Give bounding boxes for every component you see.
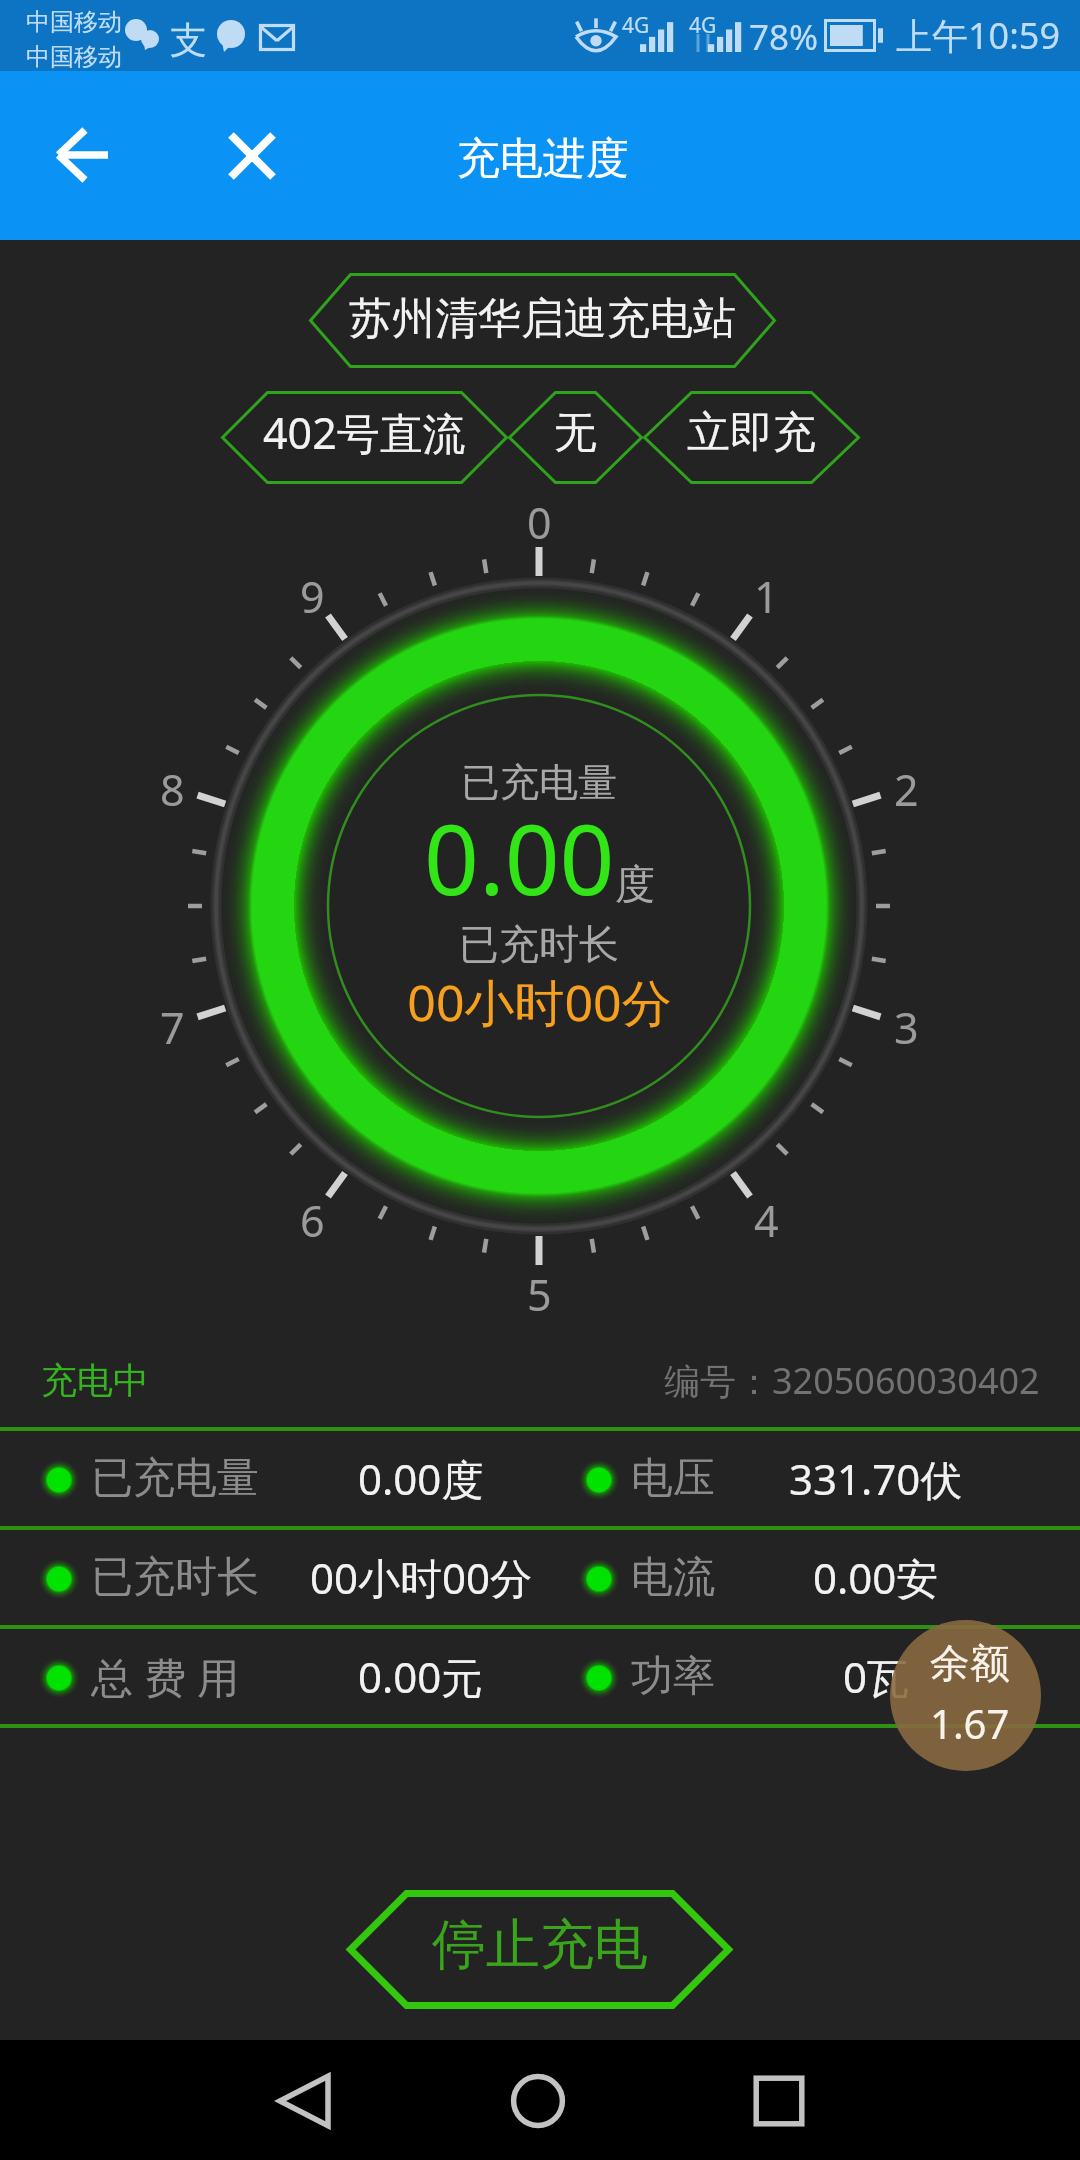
staticText: 7 xyxy=(160,998,185,1048)
staticText: 00小时00分 xyxy=(310,1549,533,1606)
staticText: 中国移动 xyxy=(26,7,122,37)
staticText: 余额 xyxy=(930,1638,1010,1688)
staticText: 0 xyxy=(527,493,552,543)
staticText: 已充时长 xyxy=(91,1551,259,1604)
staticText: 电流 xyxy=(631,1551,715,1604)
staticText: 支 xyxy=(170,17,207,64)
staticText: 78% xyxy=(749,13,819,61)
button[interactable]: Back xyxy=(264,2061,344,2141)
staticText: 9 xyxy=(300,567,325,617)
staticText: 已充时长 xyxy=(459,919,619,969)
button[interactable]: 402号直流 xyxy=(221,391,508,484)
staticText: 5 xyxy=(527,1265,552,1315)
staticText: 中国移动 xyxy=(26,42,122,72)
staticText: 0.00度 xyxy=(358,1450,484,1507)
staticText: 6 xyxy=(300,1191,325,1241)
staticText: 0.00 xyxy=(424,792,615,923)
staticText: 充电中 xyxy=(41,1358,149,1403)
staticText: 上午10:59 xyxy=(896,11,1061,60)
button[interactable]: Back xyxy=(24,95,144,215)
staticText: 2 xyxy=(894,760,919,810)
staticText: 度 xyxy=(615,859,655,909)
staticText: 4 xyxy=(754,1191,779,1241)
button[interactable]: 立即充 xyxy=(643,391,860,484)
staticText: 停止充电 xyxy=(432,1911,648,1979)
staticText: 编号：3205060030402 xyxy=(664,1356,1040,1405)
button[interactable]: 已充时长 xyxy=(0,1529,1080,1625)
button[interactable]: 总 费 用 xyxy=(0,1628,1080,1724)
button[interactable]: Home xyxy=(498,2061,578,2141)
button[interactable]: 苏州清华启迪充电站 xyxy=(309,273,776,368)
staticText: 已充电量 xyxy=(91,1452,259,1505)
staticText: 无 xyxy=(554,406,597,460)
staticText: 4G xyxy=(689,11,717,40)
staticText: 电压 xyxy=(631,1452,715,1505)
staticText: 已充电量 xyxy=(461,758,617,807)
button[interactable]: 停止充电 xyxy=(347,1890,732,2009)
staticText: 4G xyxy=(622,11,650,40)
staticText: 1.67 xyxy=(930,1696,1010,1750)
staticText: 立即充 xyxy=(687,406,816,460)
staticText: 8 xyxy=(160,760,185,810)
staticText: 总 费 用 xyxy=(91,1648,239,1705)
button[interactable]: 余额 xyxy=(890,1620,1041,1771)
staticText: 0.00安 xyxy=(813,1549,939,1606)
staticText: 3 xyxy=(894,998,919,1048)
staticText: 0.00元 xyxy=(358,1648,484,1705)
staticText: 功率 xyxy=(631,1650,715,1703)
button[interactable]: 已充电量 xyxy=(0,1430,1080,1526)
button[interactable]: Close xyxy=(192,96,312,216)
staticText: 充电进度 xyxy=(457,132,629,186)
button[interactable]: 无 xyxy=(508,391,643,484)
staticText: 331.70伏 xyxy=(789,1450,963,1507)
button[interactable]: Recent apps xyxy=(739,2061,819,2141)
staticText: 苏州清华启迪充电站 xyxy=(349,292,736,346)
staticText: 0瓦 xyxy=(843,1648,910,1705)
staticText: 402号直流 xyxy=(263,403,466,462)
staticText: 1 xyxy=(754,567,779,617)
staticText: 00小时00分 xyxy=(407,968,672,1036)
